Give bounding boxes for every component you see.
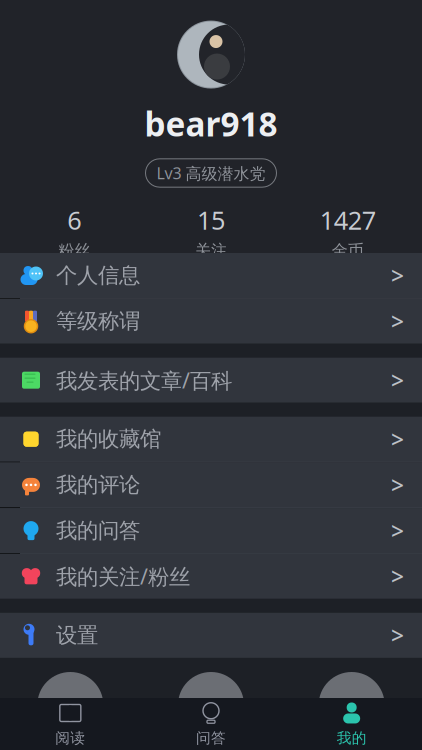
button[interactable]: 设置 xyxy=(0,613,422,658)
staticText: 等级称谓 xyxy=(56,308,140,334)
staticText: 我的关注/粉丝 xyxy=(56,562,190,590)
staticText: bear918 xyxy=(144,102,277,146)
staticText: > xyxy=(391,561,404,591)
staticText: 15 xyxy=(197,203,225,237)
staticText: > xyxy=(391,470,404,500)
staticText: 6 xyxy=(67,203,81,237)
staticText: 1427 xyxy=(320,203,376,237)
staticText: Lv3 高级潜水党 xyxy=(156,162,265,184)
staticText: 设置 xyxy=(56,622,98,648)
staticText: > xyxy=(391,515,404,546)
button[interactable]: 我的问答 xyxy=(0,508,422,554)
staticText: > xyxy=(391,260,404,290)
button[interactable]: 我的收藏馆 xyxy=(0,417,422,462)
staticText: 金币 xyxy=(332,241,364,260)
staticText: > xyxy=(391,424,404,454)
button[interactable]: 我发表的文章/百科 xyxy=(0,358,422,403)
button[interactable]: 个人信息 xyxy=(0,253,422,299)
button[interactable]: 我的关注/粉丝 xyxy=(0,554,422,599)
button[interactable]: 问答 xyxy=(141,699,281,749)
staticText: 粉丝 xyxy=(58,241,90,260)
staticText: 我的评论 xyxy=(56,472,140,498)
button[interactable]: 阅读 xyxy=(0,699,141,749)
staticText: > xyxy=(391,306,404,336)
button[interactable]: 我的 xyxy=(281,699,422,749)
staticText: 个人信息 xyxy=(56,262,140,289)
staticText: 阅读 xyxy=(55,729,85,747)
staticText: > xyxy=(391,365,404,395)
staticText: 关注 xyxy=(195,241,227,260)
staticText: 我的 xyxy=(337,729,367,747)
button[interactable]: 我的评论 xyxy=(0,462,422,508)
staticText: 我的收藏馆 xyxy=(56,426,161,452)
button[interactable]: 等级称谓 xyxy=(0,299,422,344)
staticText: 我的问答 xyxy=(56,517,140,544)
staticText: > xyxy=(391,620,404,650)
staticText: 我发表的文章/百科 xyxy=(56,366,232,394)
staticText: 问答 xyxy=(196,729,226,747)
